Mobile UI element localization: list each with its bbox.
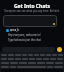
button[interactable]: u bbox=[40, 54, 45, 56]
button[interactable]: f bbox=[22, 58, 28, 60]
button[interactable]: d bbox=[15, 58, 21, 60]
button[interactable]: t bbox=[28, 54, 33, 56]
staticText: Everyone can see what you say here. Be k… bbox=[4, 9, 60, 13]
button[interactable]: Send bbox=[57, 47, 62, 52]
button[interactable]: q bbox=[1, 54, 7, 56]
button[interactable]: l bbox=[57, 58, 63, 60]
button[interactable]: n bbox=[46, 62, 54, 64]
staticText: Get Into Chats bbox=[14, 3, 51, 8]
button[interactable]: Period bbox=[47, 66, 53, 68]
button[interactable]: w bbox=[8, 54, 14, 56]
button[interactable] bbox=[3, 15, 57, 27]
button[interactable]: g bbox=[29, 58, 35, 60]
button[interactable]: m bbox=[55, 62, 63, 64]
button[interactable]: a bbox=[1, 58, 7, 60]
button[interactable]: x bbox=[10, 62, 18, 64]
button[interactable]: v bbox=[28, 62, 36, 64]
button[interactable]: o bbox=[52, 54, 57, 56]
staticText: Type below to join the chat bbox=[8, 38, 41, 42]
button[interactable]: y bbox=[34, 54, 39, 56]
button[interactable]: r bbox=[22, 54, 27, 56]
button[interactable]: e bbox=[15, 54, 21, 56]
button[interactable]: s bbox=[8, 58, 14, 60]
button[interactable]: j bbox=[43, 58, 49, 60]
button[interactable]: c bbox=[19, 62, 27, 64]
button[interactable]: Comma bbox=[10, 66, 16, 68]
button[interactable]: b bbox=[37, 62, 45, 64]
button[interactable]: anna_b bbox=[6, 28, 60, 32]
button[interactable]: z bbox=[1, 62, 9, 64]
button[interactable]: k bbox=[50, 58, 56, 60]
button[interactable]: i bbox=[46, 54, 51, 56]
button[interactable]: p bbox=[58, 54, 63, 56]
staticText: anna_b bbox=[10, 28, 19, 32]
staticText: Hey everyone, welcome in! bbox=[8, 33, 41, 37]
button[interactable]: h bbox=[36, 58, 42, 60]
button[interactable]: Symbols bbox=[1, 66, 9, 68]
